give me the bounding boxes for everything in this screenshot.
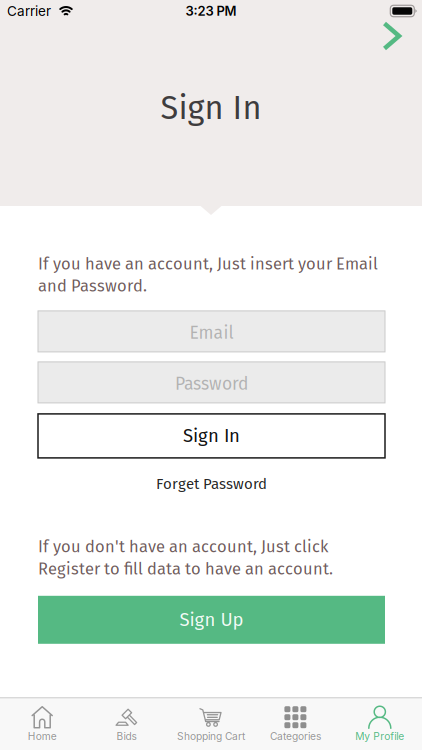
button[interactable]: Shopping Cart [169, 706, 253, 742]
staticText: If you have an account, Just insert your… [38, 254, 378, 296]
button[interactable]: Email [38, 311, 385, 352]
staticText: Home [28, 730, 57, 742]
staticText: Forget Password [156, 475, 267, 493]
staticText: Carrier [7, 3, 51, 19]
button[interactable]: Forget Password [38, 475, 385, 493]
staticText: If you don't have an account, Just click… [38, 537, 333, 579]
button[interactable]: Bids [84, 706, 169, 742]
button[interactable]: Sign Up [38, 596, 385, 644]
staticText: Bids [117, 730, 137, 742]
staticText: Password [175, 373, 248, 394]
button[interactable]: Sign In [38, 414, 385, 458]
staticText: 3:23 PM [185, 3, 236, 19]
staticText: Categories [270, 730, 321, 742]
button[interactable]: Home [0, 706, 84, 742]
button[interactable]: My Profile [338, 706, 422, 742]
button[interactable]: Skip [384, 23, 422, 48]
staticText: My Profile [355, 730, 404, 742]
staticText: Sign In [160, 88, 261, 127]
button[interactable]: Categories [253, 706, 338, 742]
staticText: Email [189, 322, 233, 343]
staticText: Sign In [183, 425, 240, 447]
button[interactable]: Password [38, 362, 385, 403]
staticText: Sign Up [179, 609, 243, 631]
staticText: Shopping Cart [177, 730, 245, 742]
